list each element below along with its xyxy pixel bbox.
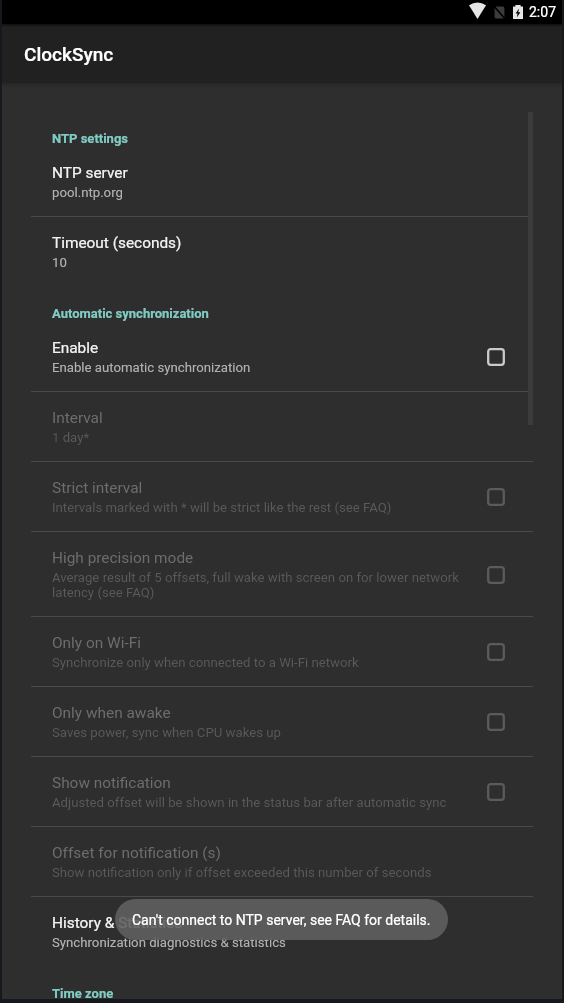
staticText: ClockSync	[24, 43, 114, 65]
staticText: Show notification only if offset exceede…	[52, 865, 432, 880]
button[interactable]: Offset for notification (s)	[0, 827, 564, 897]
button[interactable]: High precision mode	[0, 532, 564, 617]
button[interactable]: Only when awake	[0, 687, 564, 757]
staticText: Saves power, sync when CPU wakes up	[52, 725, 281, 740]
button[interactable]: NTP server	[0, 147, 564, 217]
button[interactable]: Timeout (seconds)	[0, 217, 564, 287]
staticText: Only when awake	[52, 704, 171, 722]
staticText: pool.ntp.org	[52, 185, 123, 200]
button[interactable]: History & Statistics	[0, 897, 564, 967]
staticText: Can't connect to NTP server, see FAQ for…	[132, 912, 431, 928]
staticText: High precision mode	[52, 549, 194, 567]
staticText: Interval	[52, 409, 103, 427]
staticText: Intervals marked with * will be strict l…	[52, 500, 392, 515]
button[interactable]: Only on Wi-Fi	[0, 617, 564, 687]
button[interactable]: Interval	[0, 392, 564, 462]
staticText: Average result of 5 offsets, full wake w…	[52, 570, 467, 600]
staticText: 10	[52, 255, 67, 270]
staticText: Show notification	[52, 774, 171, 792]
staticText: Only on Wi-Fi	[52, 634, 141, 652]
staticText: NTP server	[52, 164, 128, 182]
other: No SIM card	[494, 6, 505, 19]
staticText: Offset for notification (s)	[52, 844, 221, 862]
button[interactable]: Show notification	[0, 757, 564, 827]
staticText: Time zone	[52, 986, 114, 1001]
staticText: Synchronize only when connected to a Wi-…	[52, 655, 359, 670]
staticText: Timeout (seconds)	[52, 234, 182, 252]
staticText: Adjusted offset will be shown in the sta…	[52, 795, 447, 810]
other: Wi-Fi	[469, 6, 486, 19]
button[interactable]: Strict interval	[0, 462, 564, 532]
staticText: NTP settings	[52, 131, 129, 146]
button[interactable]: Enable	[0, 322, 564, 392]
staticText: Enable	[52, 339, 99, 357]
staticText: 1 day*	[52, 430, 90, 445]
button[interactable]: ClockSync	[0, 24, 564, 83]
staticText: Strict interval	[52, 479, 143, 497]
staticText: Automatic synchronization	[52, 306, 209, 321]
staticText: Enable automatic synchronization	[52, 360, 251, 375]
other: Battery charging	[513, 5, 523, 19]
staticText: History & Statistics	[52, 914, 183, 932]
staticText: Synchronization diagnostics & statistics	[52, 935, 286, 950]
staticText: 2:07	[529, 4, 556, 20]
